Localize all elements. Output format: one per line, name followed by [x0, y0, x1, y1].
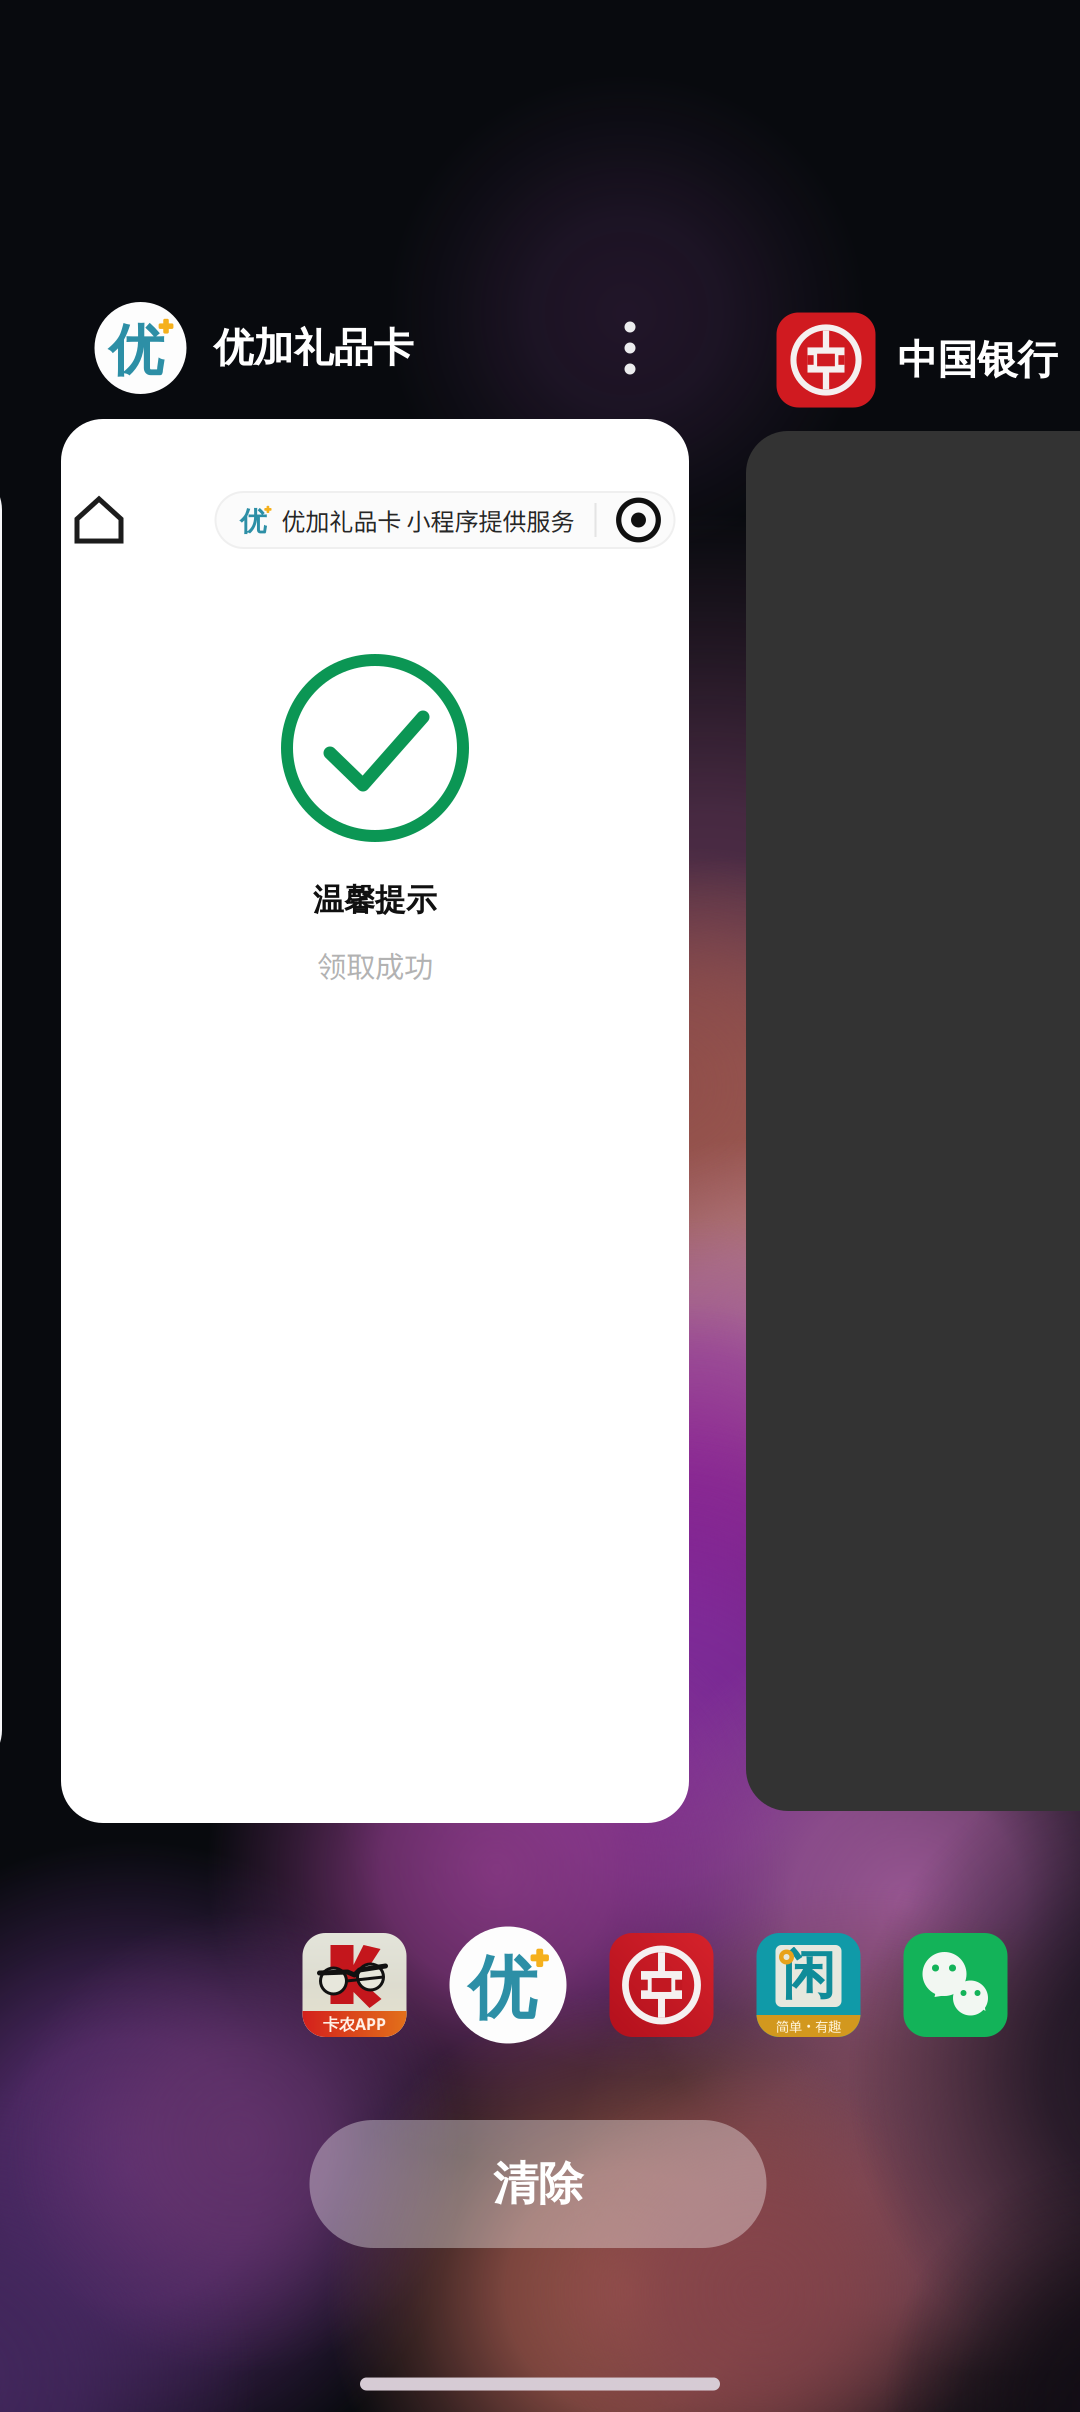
button[interactable]: 清除 — [309, 2120, 766, 2248]
button[interactable]: Home — [65, 486, 133, 554]
staticText: 优 — [468, 1945, 537, 2032]
staticText: 简单·有趣 — [776, 2016, 841, 2036]
staticText: 卡农APP — [323, 2013, 386, 2035]
staticText: 优加礼品卡 — [213, 323, 413, 373]
button[interactable]: 优 — [94, 302, 413, 394]
button[interactable]: 中国银行 — [609, 1933, 713, 2037]
staticText: 优 — [109, 316, 164, 386]
button[interactable]: More options — [598, 308, 662, 388]
button[interactable]: 微信 — [903, 1933, 1007, 2037]
button[interactable]: 闲鱼 — [756, 1933, 860, 2037]
button[interactable]: 卡农APP — [302, 1933, 406, 2037]
staticText: 领取成功 — [317, 944, 433, 986]
staticText: 清除 — [493, 2155, 583, 2212]
staticText: 温馨提示 — [313, 881, 437, 919]
staticText: 闲 — [782, 1941, 835, 2009]
button[interactable]: 优加礼品卡 — [449, 1926, 566, 2043]
button[interactable]: 中国银行 — [776, 312, 1057, 407]
button[interactable]: 优 — [215, 492, 674, 548]
staticText: 优 — [240, 504, 267, 538]
staticText: 中国银行 — [897, 335, 1057, 385]
staticText: 优加礼品卡 小程序提供服务 — [281, 503, 574, 537]
